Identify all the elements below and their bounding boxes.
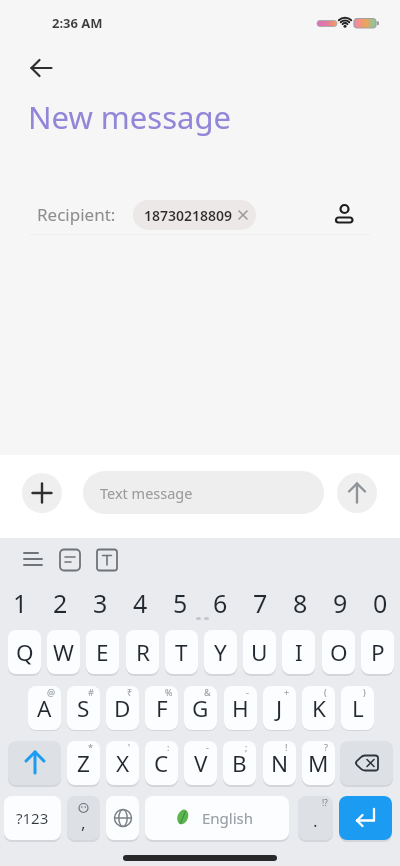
staticText: L: [352, 693, 364, 724]
button[interactable]: C: [145, 741, 178, 785]
staticText: -: [246, 686, 249, 698]
button[interactable]: I: [282, 630, 315, 674]
button[interactable]: ,: [67, 796, 100, 840]
button[interactable]: J: [263, 686, 296, 730]
button[interactable]: G: [184, 686, 217, 730]
staticText: J: [276, 693, 283, 724]
button[interactable]: [106, 796, 139, 840]
button[interactable]: 8: [280, 586, 320, 620]
button[interactable]: 7: [240, 586, 280, 620]
button[interactable]: A: [28, 686, 61, 730]
staticText: O: [330, 637, 348, 668]
staticText: 3: [93, 586, 108, 620]
staticText: X: [116, 748, 130, 779]
staticText: !?: [322, 797, 328, 808]
staticText: U: [251, 637, 268, 668]
staticText: T: [175, 637, 188, 668]
staticText: R: [136, 637, 150, 668]
button[interactable]: K: [302, 686, 335, 730]
button[interactable]: W: [47, 630, 80, 674]
button[interactable]: Text message: [83, 471, 324, 514]
button[interactable]: E: [86, 630, 119, 674]
button[interactable]: H: [224, 686, 257, 730]
staticText: M: [308, 748, 329, 779]
staticText: S: [77, 693, 90, 724]
button[interactable]: [26, 53, 56, 83]
button[interactable]: U: [243, 630, 276, 674]
staticText: B: [232, 748, 247, 779]
button[interactable]: [331, 195, 359, 231]
staticText: 8: [293, 586, 308, 620]
button[interactable]: .: [298, 796, 333, 840]
button[interactable]: [18, 548, 48, 572]
staticText: D: [114, 693, 131, 724]
button[interactable]: Q: [8, 630, 41, 674]
staticText: @: [47, 686, 56, 698]
button[interactable]: F: [145, 686, 178, 730]
button[interactable]: P: [361, 630, 394, 674]
button[interactable]: [22, 473, 62, 513]
button[interactable]: B: [223, 741, 256, 785]
button[interactable]: [337, 473, 377, 513]
staticText: 6: [213, 586, 228, 620]
staticText: !: [285, 741, 288, 753]
staticText: *: [88, 741, 93, 753]
button[interactable]: M: [302, 741, 335, 785]
staticText: +: [284, 686, 290, 698]
staticText: Q: [16, 637, 34, 668]
staticText: K: [312, 693, 326, 724]
staticText: Z: [77, 748, 90, 779]
staticText: W: [53, 637, 74, 668]
button[interactable]: V: [184, 741, 217, 785]
button[interactable]: 2: [40, 586, 80, 620]
button[interactable]: ?123: [4, 796, 61, 840]
staticText: New message: [28, 96, 231, 138]
button[interactable]: [340, 741, 393, 785]
button[interactable]: 4: [120, 586, 160, 620]
staticText: .: [313, 809, 318, 832]
button[interactable]: [57, 548, 83, 572]
staticText: ): [363, 686, 366, 698]
staticText: I: [295, 637, 303, 668]
button[interactable]: 18730218809: [133, 200, 256, 230]
staticText: ': [128, 741, 131, 753]
staticText: ,: [81, 811, 86, 834]
button[interactable]: [8, 741, 61, 785]
button[interactable]: Y: [204, 630, 237, 674]
staticText: 5: [173, 586, 188, 620]
button[interactable]: [339, 796, 392, 840]
staticText: 4: [133, 586, 148, 620]
staticText: 18730218809: [144, 206, 233, 225]
button[interactable]: 9: [320, 586, 360, 620]
staticText: A: [37, 693, 52, 724]
staticText: %: [165, 686, 173, 698]
staticText: E: [96, 637, 109, 668]
button[interactable]: R: [126, 630, 159, 674]
button[interactable]: S: [67, 686, 100, 730]
staticText: Text message: [100, 483, 193, 503]
button[interactable]: N: [263, 741, 296, 785]
staticText: 0: [373, 586, 388, 620]
staticText: 2: [53, 586, 68, 620]
button[interactable]: [94, 548, 120, 572]
button[interactable]: L: [341, 686, 374, 730]
staticText: #: [88, 686, 94, 698]
button[interactable]: 0: [360, 586, 400, 620]
button[interactable]: 6: [200, 586, 240, 620]
button[interactable]: O: [322, 630, 355, 674]
button[interactable]: English: [145, 796, 289, 840]
button[interactable]: D: [106, 686, 139, 730]
staticText: G: [192, 693, 209, 724]
staticText: 9: [333, 586, 348, 620]
button[interactable]: 5: [160, 586, 200, 620]
staticText: ?123: [16, 808, 49, 828]
button[interactable]: 3: [80, 586, 120, 620]
staticText: C: [154, 748, 169, 779]
button[interactable]: Z: [67, 741, 100, 785]
staticText: F: [156, 693, 168, 724]
staticText: H: [232, 693, 249, 724]
button[interactable]: X: [106, 741, 139, 785]
button[interactable]: T: [165, 630, 198, 674]
staticText: 7: [253, 586, 268, 620]
button[interactable]: 1: [0, 586, 40, 620]
